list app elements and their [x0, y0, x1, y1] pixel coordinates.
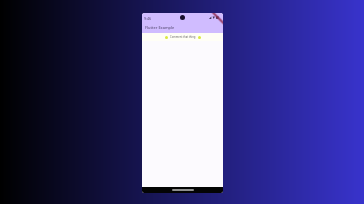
staticText: Comment that thing [170, 35, 196, 39]
staticText: Flutter Example [145, 25, 175, 30]
staticText: 9:46 [144, 16, 152, 21]
